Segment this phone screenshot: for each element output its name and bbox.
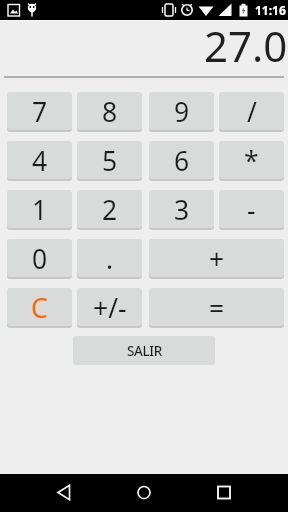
staticText: 1 <box>32 192 48 228</box>
button[interactable]: 8 <box>77 92 142 130</box>
staticText: 11:16 <box>255 2 286 18</box>
staticText: 27.0 <box>204 17 288 73</box>
button[interactable]: / <box>219 92 284 130</box>
staticText: 8 <box>102 94 118 130</box>
staticText: 2 <box>102 192 118 228</box>
button[interactable]: 4 <box>7 141 72 179</box>
staticText: SALIR <box>127 342 162 360</box>
staticText: 7 <box>32 94 48 130</box>
button[interactable]: - <box>219 190 284 228</box>
staticText: / <box>247 94 257 130</box>
button[interactable]: + <box>149 239 284 277</box>
staticText: 9 <box>174 94 190 130</box>
staticText: + <box>209 241 225 277</box>
button[interactable] <box>48 474 76 512</box>
staticText: - <box>247 192 256 228</box>
button[interactable]: 5 <box>77 141 142 179</box>
button[interactable]: 9 <box>149 92 214 130</box>
button[interactable]: 1 <box>7 190 72 228</box>
staticText: . <box>106 241 114 277</box>
button[interactable]: . <box>77 239 142 277</box>
staticText: 0 <box>32 241 48 277</box>
staticText: 5 <box>102 143 118 179</box>
button[interactable]: +/- <box>77 288 142 326</box>
staticText: 4 <box>32 143 48 179</box>
staticText: 3 <box>174 192 190 228</box>
button[interactable]: SALIR <box>73 336 215 365</box>
button[interactable]: 6 <box>149 141 214 179</box>
button[interactable]: C <box>7 288 72 326</box>
button[interactable]: 3 <box>149 190 214 228</box>
staticText: 6 <box>174 143 190 179</box>
button[interactable]: 7 <box>7 92 72 130</box>
button[interactable] <box>130 474 158 512</box>
button[interactable]: 0 <box>7 239 72 277</box>
staticText: C <box>31 290 48 326</box>
staticText: * <box>244 143 259 179</box>
button[interactable]: 2 <box>77 190 142 228</box>
button[interactable]: = <box>149 288 284 326</box>
button[interactable] <box>210 474 238 512</box>
staticText: = <box>209 290 225 326</box>
button[interactable]: * <box>219 141 284 179</box>
staticText: +/- <box>93 290 127 326</box>
